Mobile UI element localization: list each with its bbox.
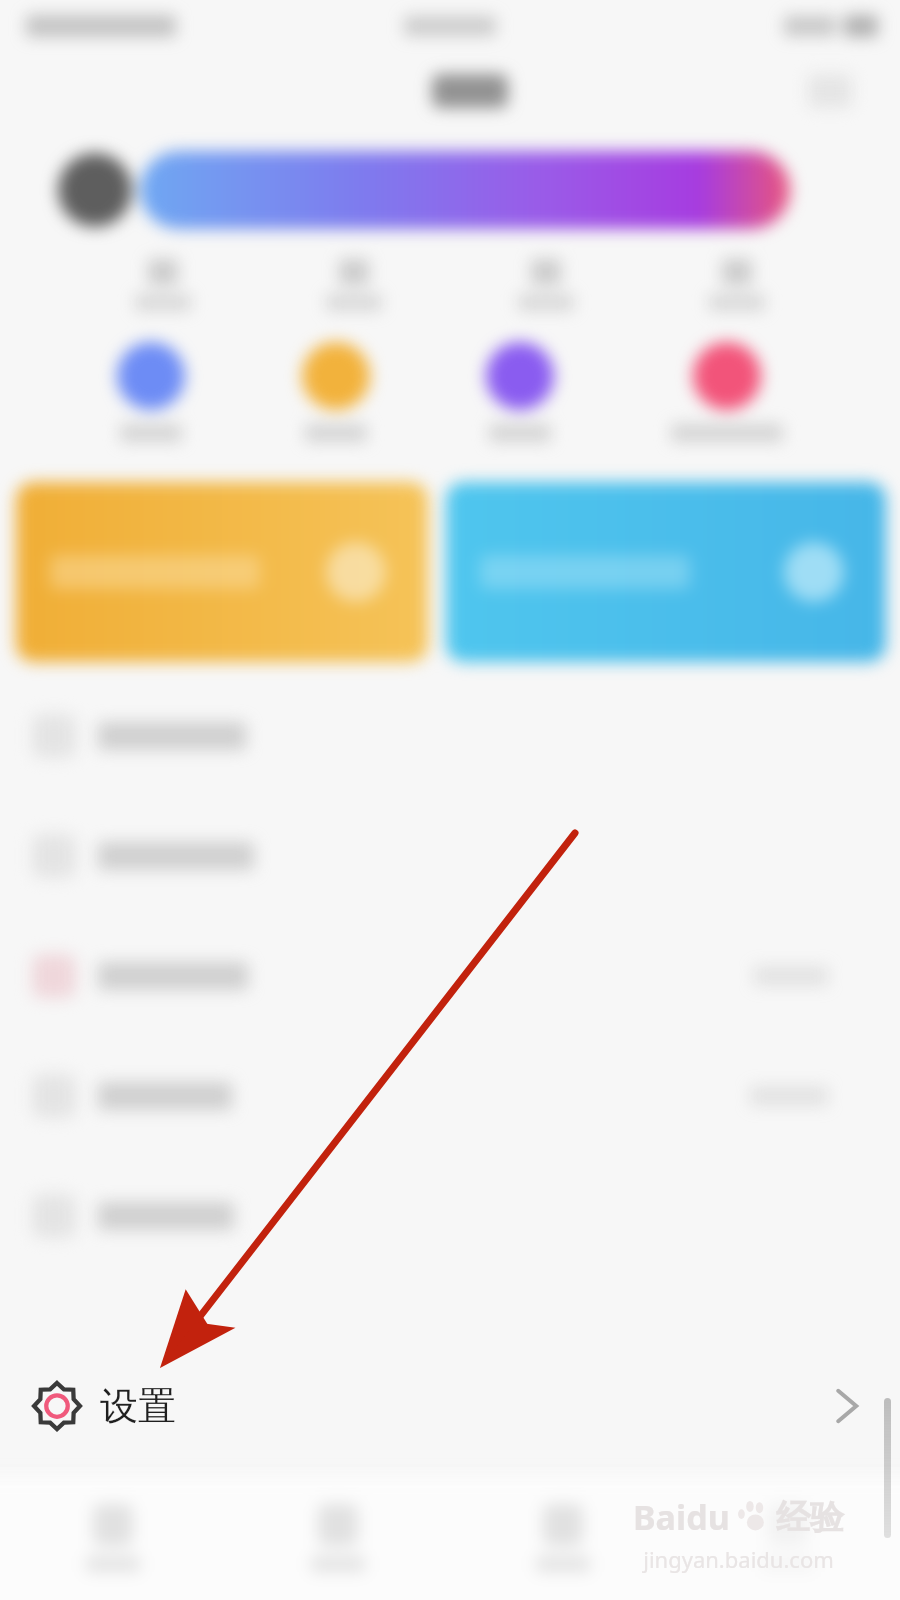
button[interactable] [671, 342, 783, 442]
staticText: 经验 [776, 1496, 844, 1539]
button[interactable] [0, 796, 900, 916]
button[interactable] [486, 342, 554, 442]
button[interactable]: 设置 [0, 1350, 900, 1462]
staticText: 设置 [100, 1382, 176, 1430]
button[interactable] [16, 482, 428, 662]
button[interactable] [225, 1504, 450, 1572]
button[interactable] [302, 342, 370, 442]
staticText: Baidu [633, 1494, 730, 1540]
button[interactable] [446, 482, 886, 662]
button[interactable] [675, 1504, 900, 1572]
button[interactable] [0, 916, 900, 1036]
staticText: jingyan.baidu.com [643, 1544, 834, 1574]
button[interactable] [117, 342, 185, 442]
button[interactable] [0, 1504, 225, 1572]
button[interactable] [0, 1156, 900, 1276]
button[interactable] [0, 1036, 900, 1156]
button[interactable] [0, 676, 900, 796]
button[interactable] [450, 1504, 675, 1572]
